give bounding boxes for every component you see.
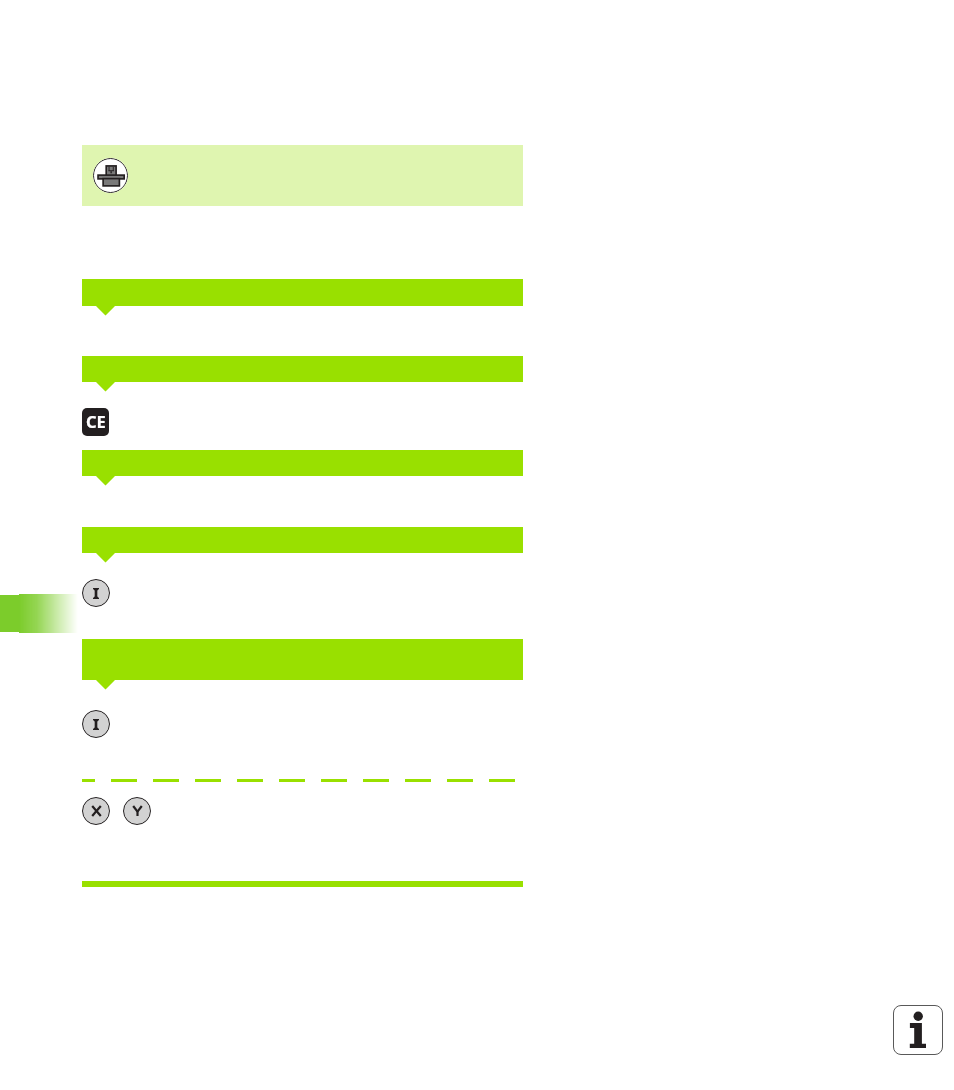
button[interactable]: Section (82, 639, 523, 691)
button[interactable]: I (82, 710, 110, 738)
button[interactable]: Machine header (82, 145, 523, 206)
button[interactable]: X (82, 797, 110, 825)
button[interactable]: Information (893, 1005, 943, 1055)
button[interactable]: Section (82, 450, 523, 487)
button[interactable]: Section (82, 279, 523, 317)
button[interactable]: Section (82, 527, 523, 564)
button[interactable]: Machine tool (93, 158, 128, 193)
button[interactable]: I (82, 579, 110, 607)
button[interactable]: Y (123, 797, 151, 825)
staticText: CE (86, 410, 106, 432)
button[interactable]: Section (82, 356, 523, 393)
button[interactable]: CE (82, 408, 109, 436)
